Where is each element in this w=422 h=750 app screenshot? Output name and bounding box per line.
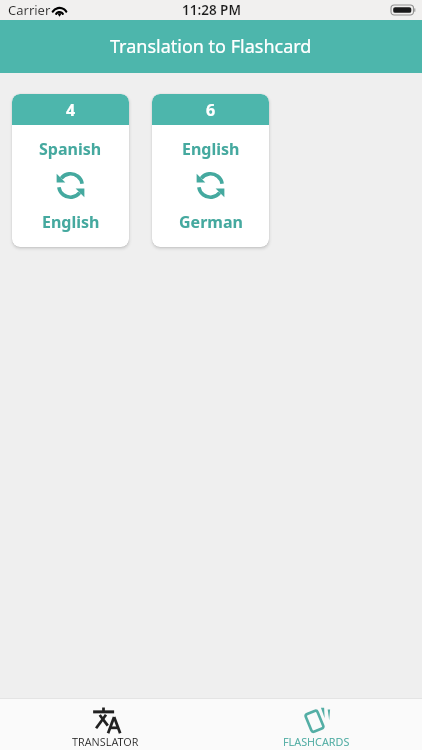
staticText: TRANSLATOR xyxy=(72,734,139,749)
staticText: Translation to Flashcard xyxy=(110,34,312,59)
staticText: English xyxy=(182,138,240,160)
staticText: Spanish xyxy=(39,138,102,160)
staticText: 6 xyxy=(206,99,216,121)
button[interactable]: 4 xyxy=(12,94,129,247)
button[interactable]: TRANSLATOR xyxy=(0,699,211,750)
staticText: 4 xyxy=(66,99,76,121)
staticText: English xyxy=(42,211,100,233)
button[interactable]: 6 xyxy=(152,94,269,247)
button[interactable]: FLASHCARDS xyxy=(211,699,422,750)
staticText: Carrier xyxy=(8,1,51,19)
staticText: German xyxy=(179,211,243,233)
staticText: FLASHCARDS xyxy=(283,734,350,749)
staticText: 11:28 PM xyxy=(182,1,241,19)
